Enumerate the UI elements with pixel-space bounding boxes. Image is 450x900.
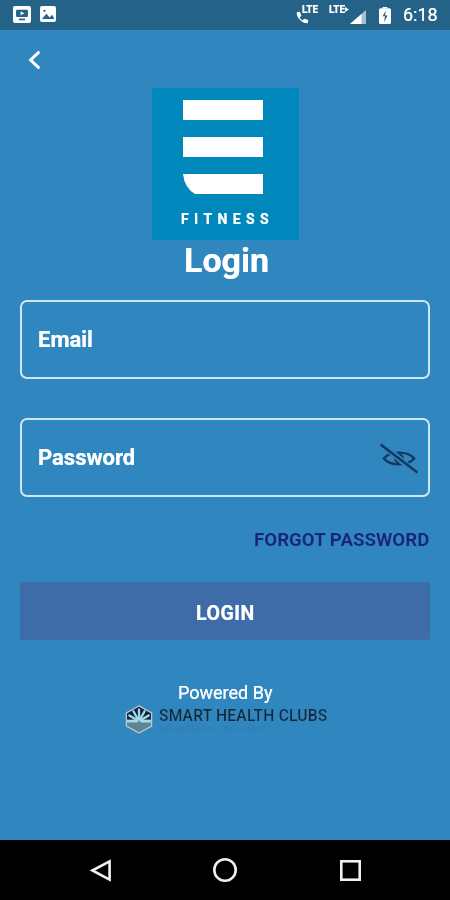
staticText: LTE <box>302 4 319 16</box>
staticText: Email <box>38 327 93 353</box>
button[interactable]: Toggle password visibility <box>377 436 421 480</box>
button[interactable]: LOGIN <box>20 582 430 640</box>
button[interactable]: Home <box>201 846 249 894</box>
staticText: SMART HEALTH CLUBS <box>159 707 328 725</box>
button[interactable]: Recent apps <box>326 846 374 894</box>
staticText: FORGOT PASSWORD <box>254 529 430 551</box>
staticText: 6:18 <box>403 4 438 25</box>
staticText: Powered By <box>178 682 273 703</box>
button[interactable]: Password <box>20 418 430 497</box>
button[interactable]: Back <box>14 40 54 80</box>
button[interactable]: Email <box>20 300 430 379</box>
staticText: Password <box>38 445 136 471</box>
staticText: ENGINEERING WELLNESS <box>159 725 268 733</box>
staticText: LOGIN <box>196 602 255 625</box>
staticText: Login <box>184 240 270 280</box>
button[interactable]: FORGOT PASSWORD <box>253 524 430 556</box>
button[interactable]: Back <box>77 846 125 894</box>
staticText: FITNESS <box>181 211 275 227</box>
staticText: LTE <box>329 4 346 16</box>
